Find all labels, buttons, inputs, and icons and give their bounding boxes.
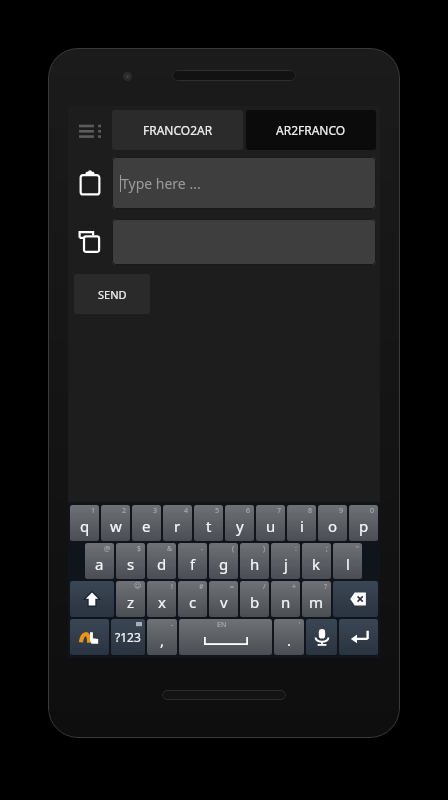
staticText: 3	[153, 506, 158, 516]
button[interactable]: =	[209, 581, 238, 617]
staticText: -	[201, 544, 204, 554]
button[interactable]: :	[271, 543, 300, 579]
staticText: j	[284, 554, 288, 574]
staticText: b	[250, 592, 260, 612]
button[interactable]: Handwriting	[70, 619, 109, 655]
staticText: .	[287, 630, 292, 650]
staticText: x	[158, 592, 166, 612]
button[interactable]: 0	[349, 505, 378, 541]
staticText: 7	[277, 506, 282, 516]
staticText: ,	[160, 630, 165, 650]
staticText: c	[189, 592, 197, 612]
button[interactable]: )	[240, 543, 269, 579]
staticText: ☺	[134, 582, 142, 590]
staticText: g	[219, 554, 229, 574]
staticText: )	[263, 544, 266, 554]
staticText: 4	[184, 506, 189, 516]
button[interactable]: @	[85, 543, 114, 579]
staticText: 1	[91, 506, 96, 516]
staticText: q	[80, 516, 90, 536]
button[interactable]: #	[178, 581, 207, 617]
button[interactable]: ;	[302, 543, 331, 579]
staticText: 2	[122, 506, 127, 516]
staticText: SEND	[98, 287, 127, 302]
button[interactable]: /	[240, 581, 269, 617]
button[interactable]: Paste	[68, 154, 112, 212]
button[interactable]: 4	[163, 505, 192, 541]
staticText: '	[299, 620, 301, 630]
staticText: u	[266, 516, 276, 536]
staticText: ?	[324, 582, 328, 592]
staticText: -	[171, 620, 174, 630]
staticText: @	[104, 544, 111, 554]
button[interactable]: ☺	[116, 581, 145, 617]
button[interactable]: !	[147, 581, 176, 617]
staticText: a	[95, 554, 104, 574]
staticText: s	[127, 554, 135, 574]
staticText: :	[295, 544, 297, 554]
button[interactable]: Space	[179, 619, 272, 655]
button[interactable]: 7	[256, 505, 285, 541]
staticText: h	[250, 554, 260, 574]
staticText: l	[346, 554, 350, 574]
staticText: ?123	[115, 629, 141, 645]
staticText: EN	[217, 620, 227, 630]
staticText: AR2FRANCO	[276, 122, 346, 138]
staticText: +	[292, 582, 297, 592]
button[interactable]: -	[147, 619, 177, 655]
staticText: n	[281, 592, 291, 612]
staticText: 9	[339, 506, 344, 516]
staticText: 0	[370, 506, 375, 516]
button[interactable]: Type here ...	[112, 157, 376, 209]
staticText: e	[142, 516, 151, 536]
button[interactable]: ?	[302, 581, 331, 617]
staticText: Type here ...	[121, 174, 201, 193]
staticText: r	[174, 516, 181, 536]
button[interactable]: +	[271, 581, 300, 617]
button[interactable]: Shift	[70, 581, 114, 617]
button[interactable]: Symbols	[111, 619, 145, 655]
button[interactable]: 8	[287, 505, 316, 541]
staticText: ;	[326, 544, 328, 554]
button[interactable]: SEND	[74, 274, 150, 314]
staticText: y	[236, 516, 244, 536]
staticText: $	[137, 544, 142, 554]
button[interactable]: 9	[318, 505, 347, 541]
button[interactable]: (	[209, 543, 238, 579]
staticText: &	[167, 544, 173, 554]
staticText: d	[157, 554, 167, 574]
staticText: f	[190, 554, 196, 574]
button[interactable]: Menu	[68, 106, 112, 154]
button[interactable]: 6	[225, 505, 254, 541]
button[interactable]: AR2FRANCO	[246, 110, 376, 150]
button[interactable]: Voice input	[306, 619, 337, 655]
button[interactable]: Copy	[68, 216, 112, 268]
staticText: "	[356, 544, 359, 554]
staticText: i	[300, 516, 304, 536]
staticText: =	[230, 582, 235, 592]
button[interactable]: Backspace	[333, 581, 378, 617]
staticText: #	[199, 582, 204, 592]
button[interactable]: 2	[101, 505, 130, 541]
staticText: o	[328, 516, 338, 536]
button[interactable]: -	[178, 543, 207, 579]
button[interactable]: '	[274, 619, 304, 655]
staticText: (	[232, 544, 235, 554]
staticText: !	[171, 582, 173, 592]
staticText: m	[309, 592, 324, 612]
button[interactable]: 1	[70, 505, 99, 541]
staticText: k	[312, 554, 321, 574]
button[interactable]: FRANCO2AR	[112, 110, 243, 150]
button[interactable]: 3	[132, 505, 161, 541]
staticText: z	[127, 592, 135, 612]
staticText: v	[220, 592, 228, 612]
staticText: FRANCO2AR	[143, 122, 213, 138]
button[interactable]: "	[333, 543, 362, 579]
button[interactable]: $	[116, 543, 145, 579]
button[interactable]	[112, 219, 376, 265]
button[interactable]: &	[147, 543, 176, 579]
button[interactable]: 5	[194, 505, 223, 541]
button[interactable]: Enter	[339, 619, 378, 655]
staticText: 8	[308, 506, 313, 516]
staticText: 5	[215, 506, 220, 516]
